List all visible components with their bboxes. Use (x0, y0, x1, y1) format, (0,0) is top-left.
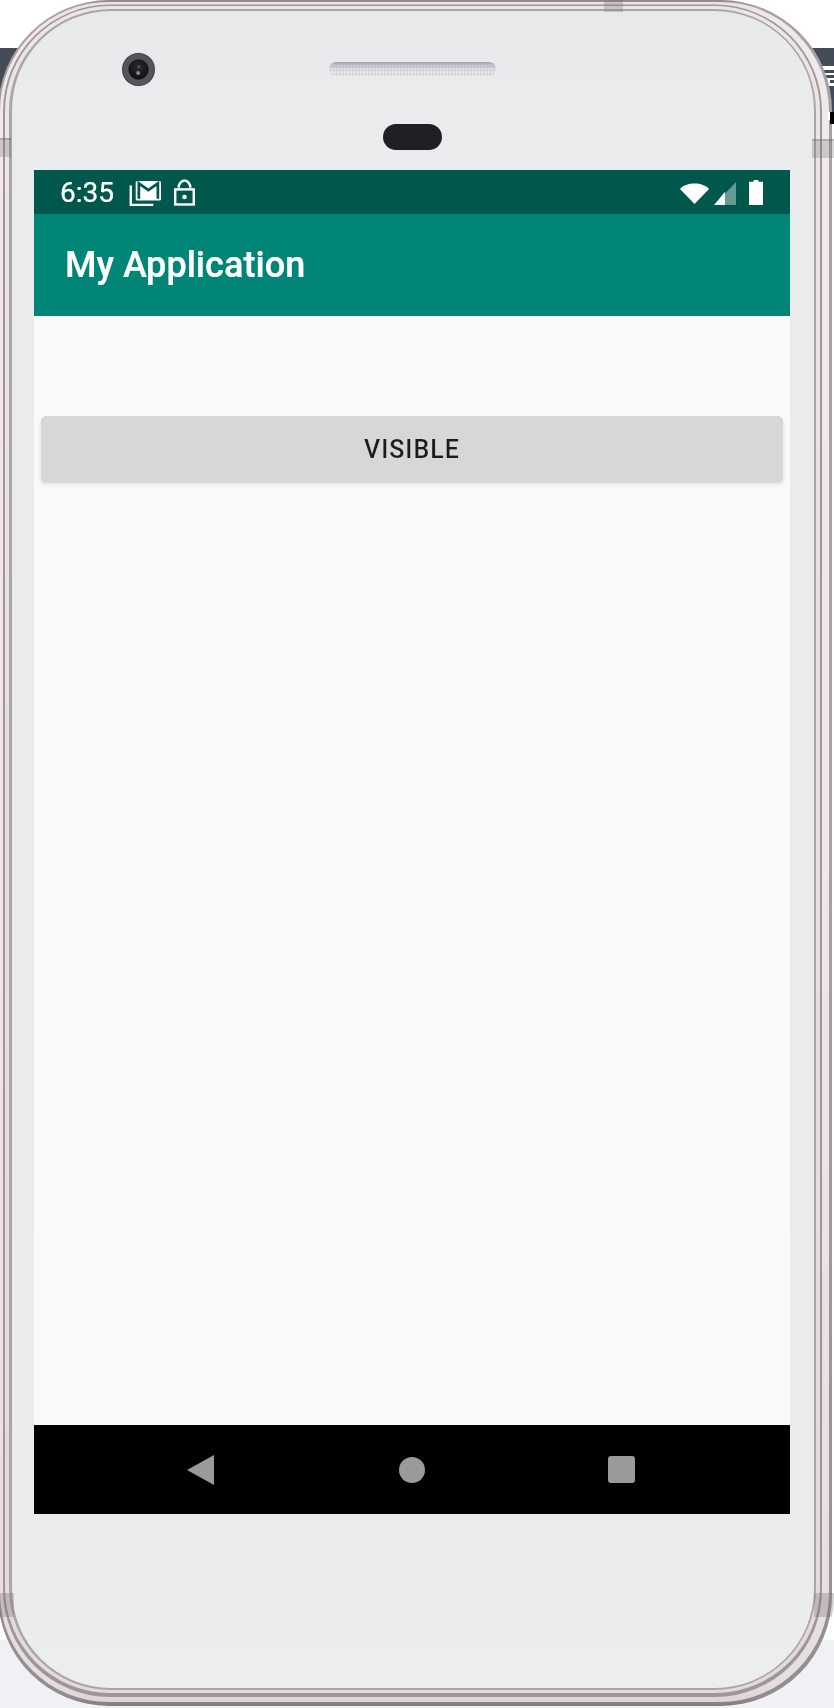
button[interactable]: Home (344, 1425, 480, 1514)
staticText: VISIBLE (364, 435, 460, 464)
button[interactable]: VISIBLE (41, 416, 783, 483)
staticText: 6:35 (60, 176, 114, 209)
button[interactable]: Recent apps (553, 1425, 689, 1514)
staticText: My Application (65, 244, 306, 286)
button[interactable]: Back (132, 1425, 268, 1514)
